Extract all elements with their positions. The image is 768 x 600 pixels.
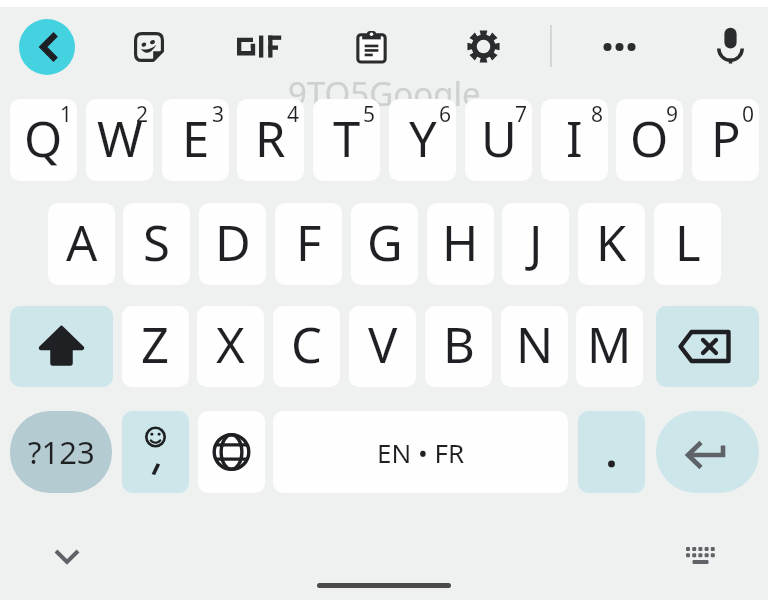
button[interactable]: Change language bbox=[198, 411, 265, 493]
button[interactable]: G bbox=[351, 203, 418, 285]
staticText: S bbox=[143, 209, 170, 276]
staticText: 2 bbox=[136, 100, 149, 129]
staticText: A bbox=[66, 209, 98, 276]
staticText: P bbox=[711, 105, 741, 172]
staticText: Y bbox=[409, 105, 437, 172]
staticText: W bbox=[97, 105, 143, 172]
staticText: 9TO5Google bbox=[288, 71, 481, 116]
button[interactable]: ?123 bbox=[10, 411, 112, 493]
button[interactable]: More options bbox=[595, 27, 643, 67]
button[interactable]: V bbox=[349, 306, 416, 387]
staticText: 9 bbox=[666, 100, 679, 129]
staticText: C bbox=[291, 311, 322, 378]
staticText: Q bbox=[24, 105, 63, 172]
button[interactable]: Enter bbox=[656, 411, 759, 493]
button[interactable]: Switch keyboard bbox=[682, 536, 718, 572]
button[interactable]: H bbox=[427, 203, 494, 285]
button[interactable]: T bbox=[313, 99, 380, 181]
button[interactable]: Shift bbox=[10, 306, 113, 387]
staticText: 1 bbox=[60, 100, 73, 129]
button[interactable]: S bbox=[123, 203, 190, 285]
staticText: V bbox=[368, 311, 398, 378]
staticText: 4 bbox=[287, 100, 300, 129]
staticText: 5 bbox=[363, 100, 376, 129]
button[interactable]: Stickers bbox=[134, 32, 164, 62]
staticText: J bbox=[529, 209, 543, 276]
button[interactable]: R bbox=[237, 99, 304, 181]
button[interactable]: Z bbox=[122, 306, 189, 387]
button[interactable]: B bbox=[425, 306, 492, 387]
button[interactable]: L bbox=[654, 203, 721, 285]
staticText: D bbox=[215, 209, 251, 276]
staticText: O bbox=[630, 105, 669, 172]
staticText: 6 bbox=[439, 100, 452, 129]
button[interactable]: M bbox=[576, 306, 643, 387]
staticText: B bbox=[443, 311, 475, 378]
button[interactable]: W bbox=[86, 99, 153, 181]
button[interactable]: D bbox=[199, 203, 266, 285]
staticText: K bbox=[596, 209, 627, 276]
button[interactable]: Settings bbox=[467, 30, 500, 63]
button[interactable]: K bbox=[578, 203, 645, 285]
button[interactable]: I bbox=[541, 99, 608, 181]
button[interactable]: X bbox=[197, 306, 264, 387]
staticText: X bbox=[216, 311, 245, 378]
button[interactable]: A bbox=[48, 203, 115, 285]
staticText: EN • FR bbox=[377, 435, 465, 470]
button[interactable]: EN • FR bbox=[273, 411, 568, 493]
staticText: N bbox=[516, 311, 554, 378]
staticText: M bbox=[587, 311, 632, 378]
button[interactable]: F bbox=[275, 203, 342, 285]
staticText: 7 bbox=[515, 100, 528, 129]
button[interactable]: J bbox=[502, 203, 569, 285]
button[interactable]: GIF bbox=[231, 28, 287, 64]
button[interactable]: Y bbox=[389, 99, 456, 181]
button[interactable]: Voice input bbox=[714, 26, 747, 59]
button[interactable]: P bbox=[692, 99, 759, 181]
staticText: I bbox=[566, 105, 583, 172]
staticText: E bbox=[182, 105, 210, 172]
staticText: Z bbox=[141, 311, 170, 378]
button[interactable]: Emoji bbox=[122, 411, 189, 493]
staticText: 3 bbox=[212, 100, 225, 129]
staticText: L bbox=[675, 209, 701, 276]
staticText: G bbox=[367, 209, 403, 276]
button[interactable]: O bbox=[616, 99, 683, 181]
staticText: 0 bbox=[742, 100, 755, 129]
button[interactable]: Clipboard bbox=[356, 31, 387, 62]
button[interactable]: U bbox=[465, 99, 532, 181]
button[interactable]: C bbox=[273, 306, 340, 387]
staticText: ?123 bbox=[28, 431, 95, 473]
button[interactable]: N bbox=[501, 306, 568, 387]
button[interactable]: Q bbox=[10, 99, 77, 181]
button[interactable]: Hide keyboard bbox=[45, 534, 89, 578]
staticText: F bbox=[296, 209, 322, 276]
button[interactable]: Period bbox=[578, 411, 645, 493]
staticText: T bbox=[333, 105, 361, 172]
button[interactable]: Back bbox=[19, 19, 75, 75]
staticText: 8 bbox=[591, 100, 604, 129]
staticText: U bbox=[481, 105, 517, 172]
staticText: R bbox=[255, 105, 286, 172]
staticText: H bbox=[442, 209, 479, 276]
button[interactable]: E bbox=[162, 99, 229, 181]
button[interactable]: Backspace bbox=[656, 306, 759, 387]
